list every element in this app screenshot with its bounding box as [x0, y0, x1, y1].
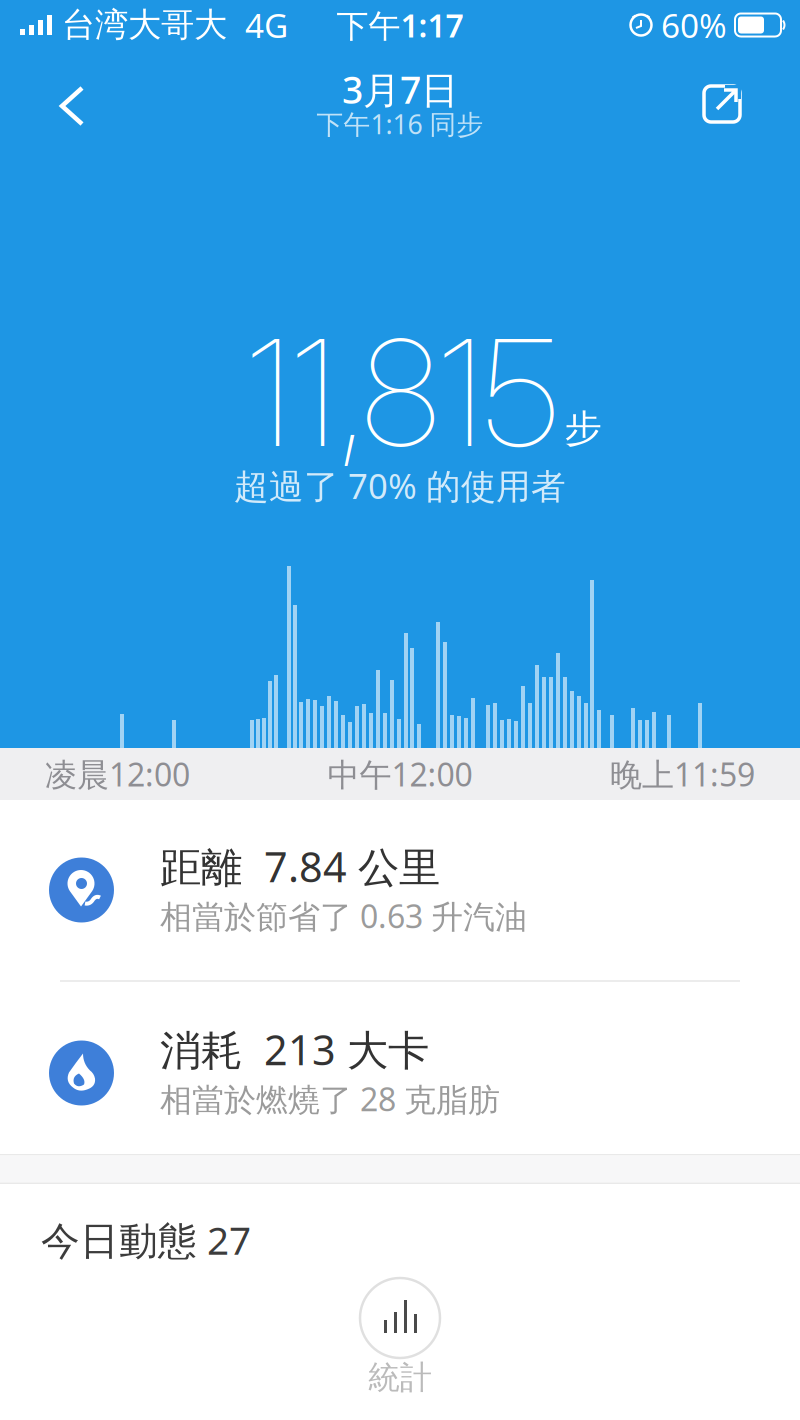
- staticText: 相當於燃燒了 28 克脂肪: [160, 1078, 500, 1120]
- staticText: 消耗 213 大卡: [160, 1022, 429, 1077]
- staticText: 中午12:00: [327, 753, 472, 795]
- staticText: 下午1:17: [336, 4, 463, 46]
- staticText: 相當於節省了 0.63 升汽油: [160, 895, 527, 937]
- staticText: 4G: [245, 3, 288, 47]
- button[interactable]: 距離 7.84 公里: [0, 800, 800, 980]
- staticText: 凌晨12:00: [45, 753, 190, 795]
- staticText: 步: [564, 406, 601, 451]
- staticText: 今日動態 27: [41, 1214, 251, 1265]
- button[interactable]: 返回: [0, 76, 90, 128]
- staticText: 晚上11:59: [610, 753, 755, 795]
- staticText: 下午1:16 同步: [316, 106, 483, 141]
- button[interactable]: 消耗 213 大卡: [0, 982, 800, 1154]
- staticText: 3月7日: [342, 64, 458, 114]
- button[interactable]: 統計: [360, 1261, 440, 1397]
- staticText: 60%: [661, 3, 727, 47]
- staticText: 統計: [368, 1358, 432, 1397]
- button[interactable]: 分享: [702, 80, 800, 124]
- staticText: 11,815: [246, 304, 558, 481]
- staticText: 超過了 70% 的使用者: [234, 462, 566, 508]
- staticText: 台湾大哥大: [62, 4, 227, 45]
- staticText: 距離 7.84 公里: [160, 839, 440, 894]
